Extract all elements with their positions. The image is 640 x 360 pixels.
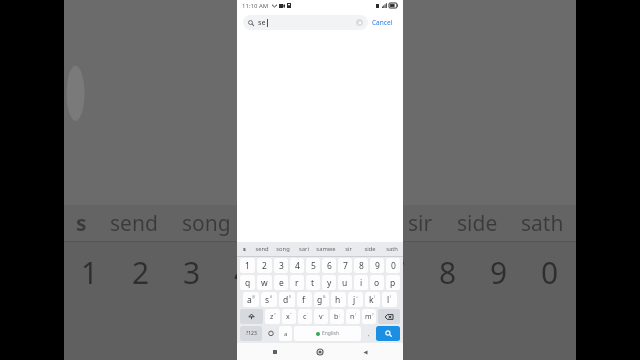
button[interactable]: 5 — [306, 258, 320, 273]
button[interactable]: g — [314, 292, 329, 307]
button[interactable]: Emoji — [264, 326, 277, 341]
staticText: sath — [386, 245, 398, 253]
button[interactable]: se — [243, 15, 368, 30]
staticText: English — [322, 330, 340, 337]
button[interactable]: sari — [293, 242, 315, 256]
button[interactable]: x — [282, 309, 296, 324]
staticText: j — [353, 294, 356, 306]
button[interactable]: Recents — [268, 345, 282, 359]
button[interactable]: j — [348, 292, 363, 307]
button[interactable]: samwe — [315, 242, 337, 256]
staticText: , — [368, 330, 370, 338]
button[interactable]: Shift — [240, 309, 263, 324]
staticText: - — [341, 294, 343, 299]
staticText: f — [302, 294, 305, 306]
button[interactable]: r — [290, 275, 304, 290]
button[interactable]: n — [346, 309, 360, 324]
button[interactable]: sath — [381, 242, 403, 256]
staticText: k — [369, 294, 374, 306]
staticText: ! — [355, 312, 356, 317]
staticText: + — [356, 294, 359, 299]
button[interactable]: side — [359, 242, 381, 256]
staticText: g — [317, 294, 323, 306]
button[interactable]: k — [365, 292, 380, 307]
button[interactable]: e — [274, 275, 288, 290]
staticText: se — [258, 18, 266, 28]
staticText: sari — [299, 245, 309, 253]
staticText: 6 — [327, 260, 332, 272]
button[interactable]: h — [331, 292, 346, 307]
button[interactable]: Home — [313, 345, 327, 359]
staticText: y — [327, 277, 332, 289]
button[interactable]: English — [294, 326, 361, 341]
button[interactable]: sir — [337, 242, 359, 256]
staticText: send — [110, 209, 158, 238]
button[interactable]: i — [354, 275, 368, 290]
button[interactable]: song — [272, 242, 293, 256]
button[interactable]: v — [314, 309, 328, 324]
button[interactable]: d — [279, 292, 295, 307]
staticText: Cancel — [372, 18, 393, 27]
button[interactable]: Cancel — [368, 15, 397, 30]
button[interactable]: w — [257, 275, 272, 290]
button[interactable]: z — [265, 309, 280, 324]
staticText: 8 — [359, 260, 364, 272]
button[interactable]: Translate — [279, 326, 292, 341]
button[interactable]: send — [251, 242, 272, 256]
button[interactable]: f — [297, 292, 312, 307]
staticText: i — [360, 277, 363, 289]
button[interactable]: l — [382, 292, 397, 307]
staticText: 5 — [311, 260, 316, 272]
button[interactable]: 1 — [240, 258, 255, 273]
button[interactable]: , — [363, 326, 374, 341]
staticText: m — [365, 312, 372, 322]
staticText: 8 — [439, 252, 457, 293]
button[interactable]: 3 — [274, 258, 288, 273]
staticText: q — [245, 277, 251, 289]
button[interactable]: o — [370, 275, 384, 290]
staticText: h — [335, 294, 341, 306]
button[interactable]: 0 — [386, 258, 400, 273]
staticText: d — [283, 294, 289, 306]
button[interactable]: t — [306, 275, 320, 290]
button[interactable]: u — [338, 275, 352, 290]
staticText: ( — [374, 294, 376, 299]
button[interactable]: Search — [376, 326, 400, 341]
staticText: a — [284, 330, 288, 338]
staticText: 2 — [262, 260, 267, 272]
button[interactable]: s — [237, 242, 251, 256]
button[interactable]: s — [261, 292, 277, 307]
button[interactable]: 9 — [370, 258, 384, 273]
staticText: : — [323, 312, 324, 317]
button[interactable]: 4 — [290, 258, 304, 273]
button[interactable]: b — [330, 309, 344, 324]
button[interactable]: q — [240, 275, 255, 290]
staticText: p — [390, 277, 396, 289]
button[interactable]: p — [386, 275, 400, 290]
staticText: z — [270, 312, 274, 322]
staticText: 2 — [132, 252, 150, 293]
button[interactable]: Back — [358, 345, 372, 359]
button[interactable]: Backspace — [378, 309, 400, 324]
button[interactable]: m — [362, 309, 376, 324]
button[interactable]: a — [243, 292, 259, 307]
staticText: x — [286, 312, 290, 322]
staticText: 9 — [375, 260, 380, 272]
staticText: 1 — [245, 260, 250, 272]
staticText: $ — [289, 294, 292, 299]
staticText: samwe — [316, 245, 336, 253]
staticText: song — [182, 209, 231, 238]
staticText: 0 — [391, 260, 396, 272]
button[interactable]: Clear search — [356, 19, 363, 26]
button[interactable]: 7 — [338, 258, 352, 273]
staticText: 4 — [295, 260, 300, 272]
button[interactable]: 2 — [257, 258, 272, 273]
button[interactable]: y — [322, 275, 336, 290]
button[interactable]: 8 — [354, 258, 368, 273]
button[interactable]: ?123 — [240, 326, 262, 341]
staticText: s — [76, 209, 87, 238]
button[interactable]: 6 — [322, 258, 336, 273]
staticText: 4 — [234, 252, 252, 293]
button[interactable]: c — [298, 309, 312, 324]
staticText: sir — [345, 245, 352, 253]
